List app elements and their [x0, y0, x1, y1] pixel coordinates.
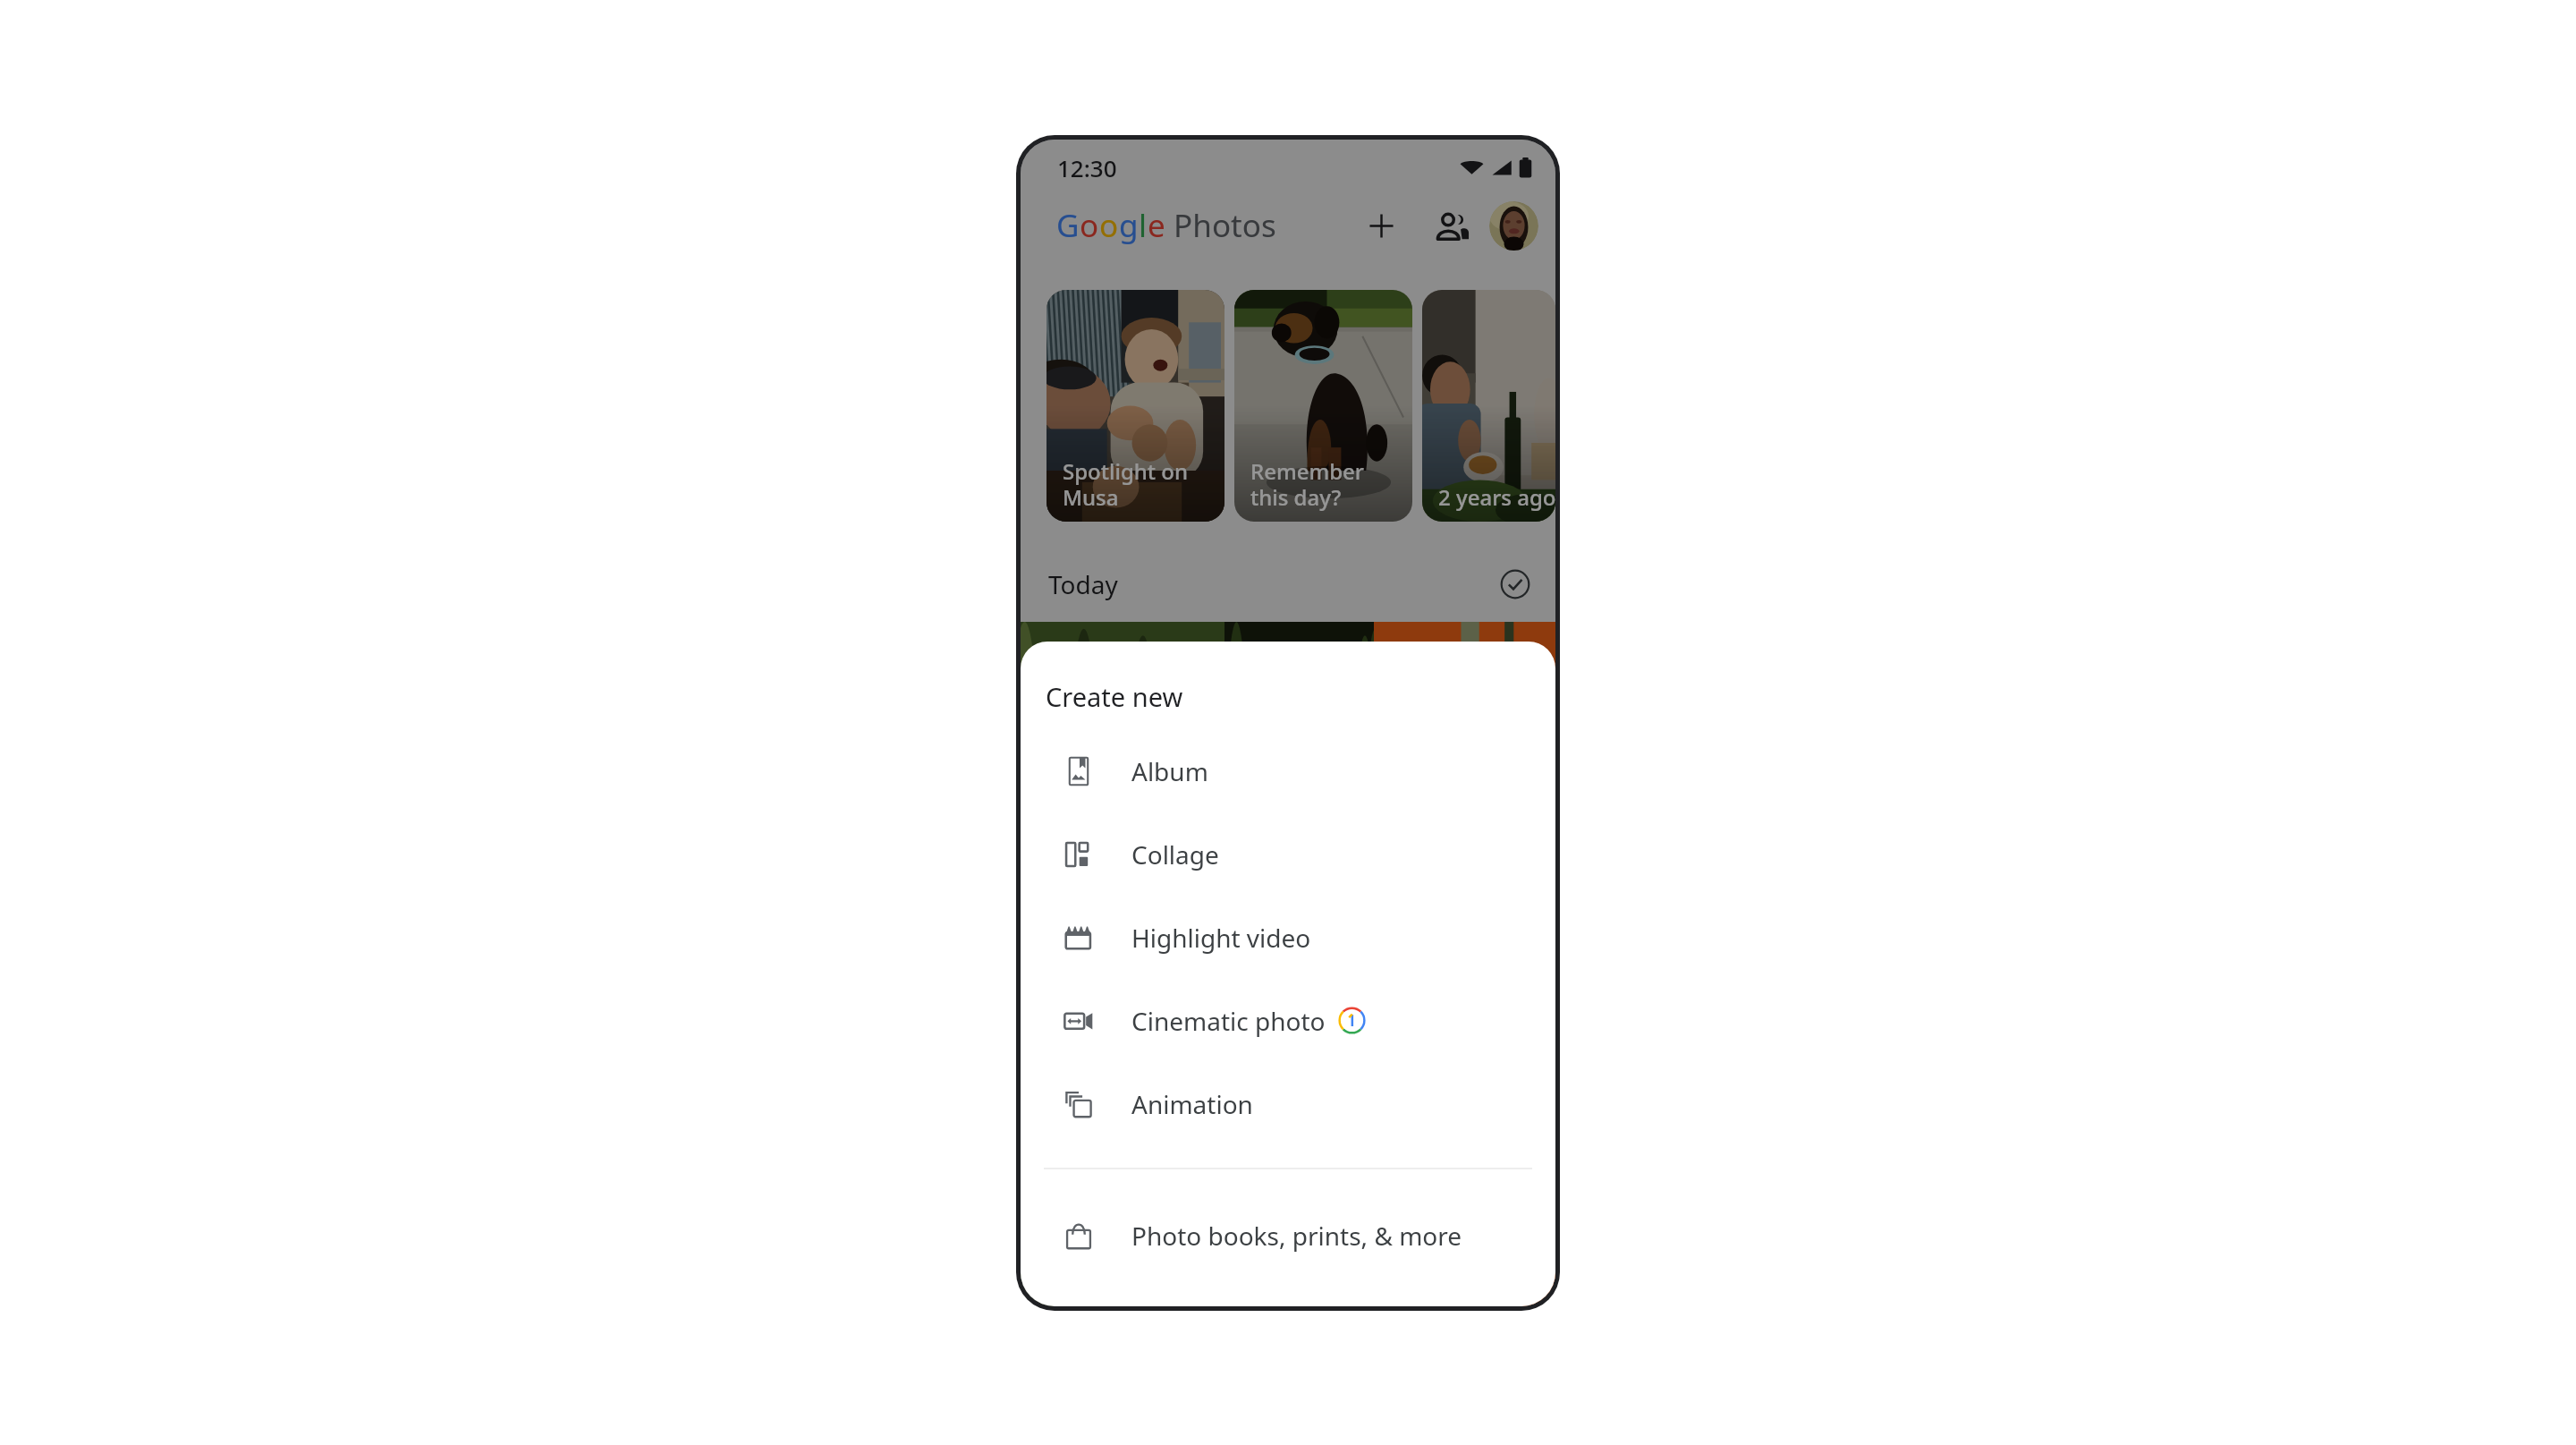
staticText: Photo books, prints, & more	[1131, 1219, 1462, 1253]
staticText: Remember this day?	[1250, 456, 1364, 512]
button[interactable]: Photo books, prints, & more	[1021, 1194, 1555, 1277]
staticText: Today	[1048, 567, 1118, 601]
staticText: g	[1119, 204, 1139, 247]
button[interactable]	[1374, 622, 1555, 1306]
button[interactable]: Collage	[1021, 812, 1555, 896]
staticText: l	[1139, 204, 1148, 247]
button[interactable]: Account	[1489, 201, 1538, 251]
staticText: e	[1148, 204, 1165, 247]
button[interactable]: Remember this day?	[1234, 290, 1412, 522]
button[interactable]: Sharing	[1428, 200, 1478, 251]
staticText: 12:30	[1057, 152, 1117, 183]
staticText: o	[1099, 204, 1119, 247]
staticText: Album	[1131, 754, 1208, 788]
staticText: Photos	[1165, 204, 1276, 247]
button[interactable]: Select photos	[1496, 565, 1534, 603]
staticText: Cinematic photo	[1131, 1004, 1326, 1038]
staticText: Create new	[1046, 679, 1183, 714]
button[interactable]: Spotlight on Musa	[1046, 290, 1224, 522]
staticText: Highlight video	[1131, 921, 1311, 955]
button[interactable]	[1021, 622, 1224, 1306]
button[interactable]: Album	[1021, 729, 1555, 812]
button[interactable]: 2 years ago	[1422, 290, 1555, 522]
button[interactable]: Cinematic photo	[1021, 979, 1555, 1062]
staticText: Spotlight on Musa	[1063, 456, 1188, 512]
button[interactable]: Highlight video	[1021, 896, 1555, 979]
staticText: Collage	[1131, 837, 1219, 871]
button[interactable]: Create new	[1356, 200, 1406, 251]
button[interactable]	[1224, 622, 1374, 1306]
staticText: Animation	[1131, 1087, 1253, 1121]
button[interactable]: Animation	[1021, 1062, 1555, 1145]
staticText: o	[1080, 204, 1099, 247]
staticText: G	[1056, 204, 1080, 247]
staticText: 2 years ago	[1438, 482, 1555, 512]
